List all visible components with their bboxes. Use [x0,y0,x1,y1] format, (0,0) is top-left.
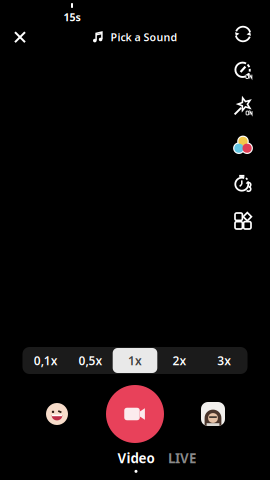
staticText: 3x [217,352,231,368]
button[interactable]: More options [226,209,260,233]
button[interactable]: LIVE [159,450,205,472]
button[interactable]: Timer [226,171,260,195]
button[interactable]: 2x [157,348,202,373]
button[interactable]: Effects [35,392,79,436]
staticText: 15s [63,10,80,24]
button[interactable]: Record [106,385,164,443]
staticText: Pick a Sound [110,30,177,44]
button[interactable]: Flip camera [226,22,260,46]
button[interactable]: Pick a Sound [83,25,186,49]
button[interactable]: Upload from gallery [191,392,235,436]
staticText: 2x [173,352,187,368]
button[interactable]: Close [6,25,34,49]
button[interactable]: 0,5x [68,348,113,373]
button[interactable]: Video [113,450,159,472]
staticText: 0,5x [78,352,102,368]
button[interactable]: 1x [113,348,157,373]
button[interactable]: Filters [226,133,260,157]
staticText: LIVE [168,449,196,467]
staticText: Video [117,449,154,467]
button[interactable]: Beautify [226,94,260,118]
button[interactable]: 3x [202,348,246,373]
button[interactable]: Speed [226,58,260,82]
button[interactable]: 0,1x [23,348,68,373]
staticText: 1x [128,352,142,368]
staticText: 0,1x [34,352,58,368]
